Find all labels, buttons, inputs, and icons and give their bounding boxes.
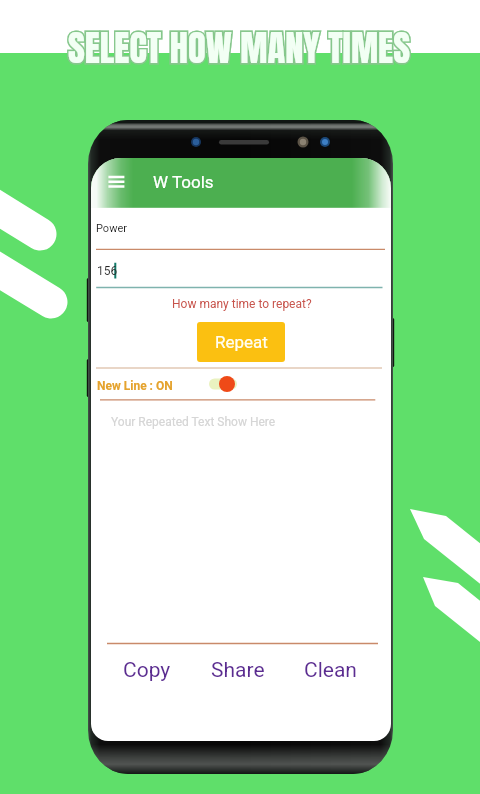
staticText: Copy — [123, 658, 171, 683]
button[interactable]: Copy — [117, 650, 177, 691]
button[interactable]: Repeat — [197, 322, 285, 362]
staticText: New Line : ON — [97, 379, 173, 393]
button[interactable]: New line toggle — [206, 372, 244, 400]
staticText: Power — [96, 222, 127, 235]
button[interactable]: Open navigation menu — [100, 169, 133, 197]
staticText: SELECT HOW MANY TIMES — [68, 20, 410, 75]
staticText: 156 — [97, 264, 118, 278]
staticText: W Tools — [153, 172, 214, 192]
staticText: Clean — [304, 658, 357, 683]
staticText: How many time to repeat? — [172, 297, 312, 311]
staticText: Share — [211, 658, 265, 683]
button[interactable]: Clean — [298, 650, 363, 691]
staticText: SELECT HOW MANY TIMES — [68, 20, 410, 75]
staticText: Repeat — [215, 332, 268, 352]
button[interactable]: Share — [205, 650, 271, 691]
staticText: Your Repeated Text Show Here — [111, 415, 276, 429]
